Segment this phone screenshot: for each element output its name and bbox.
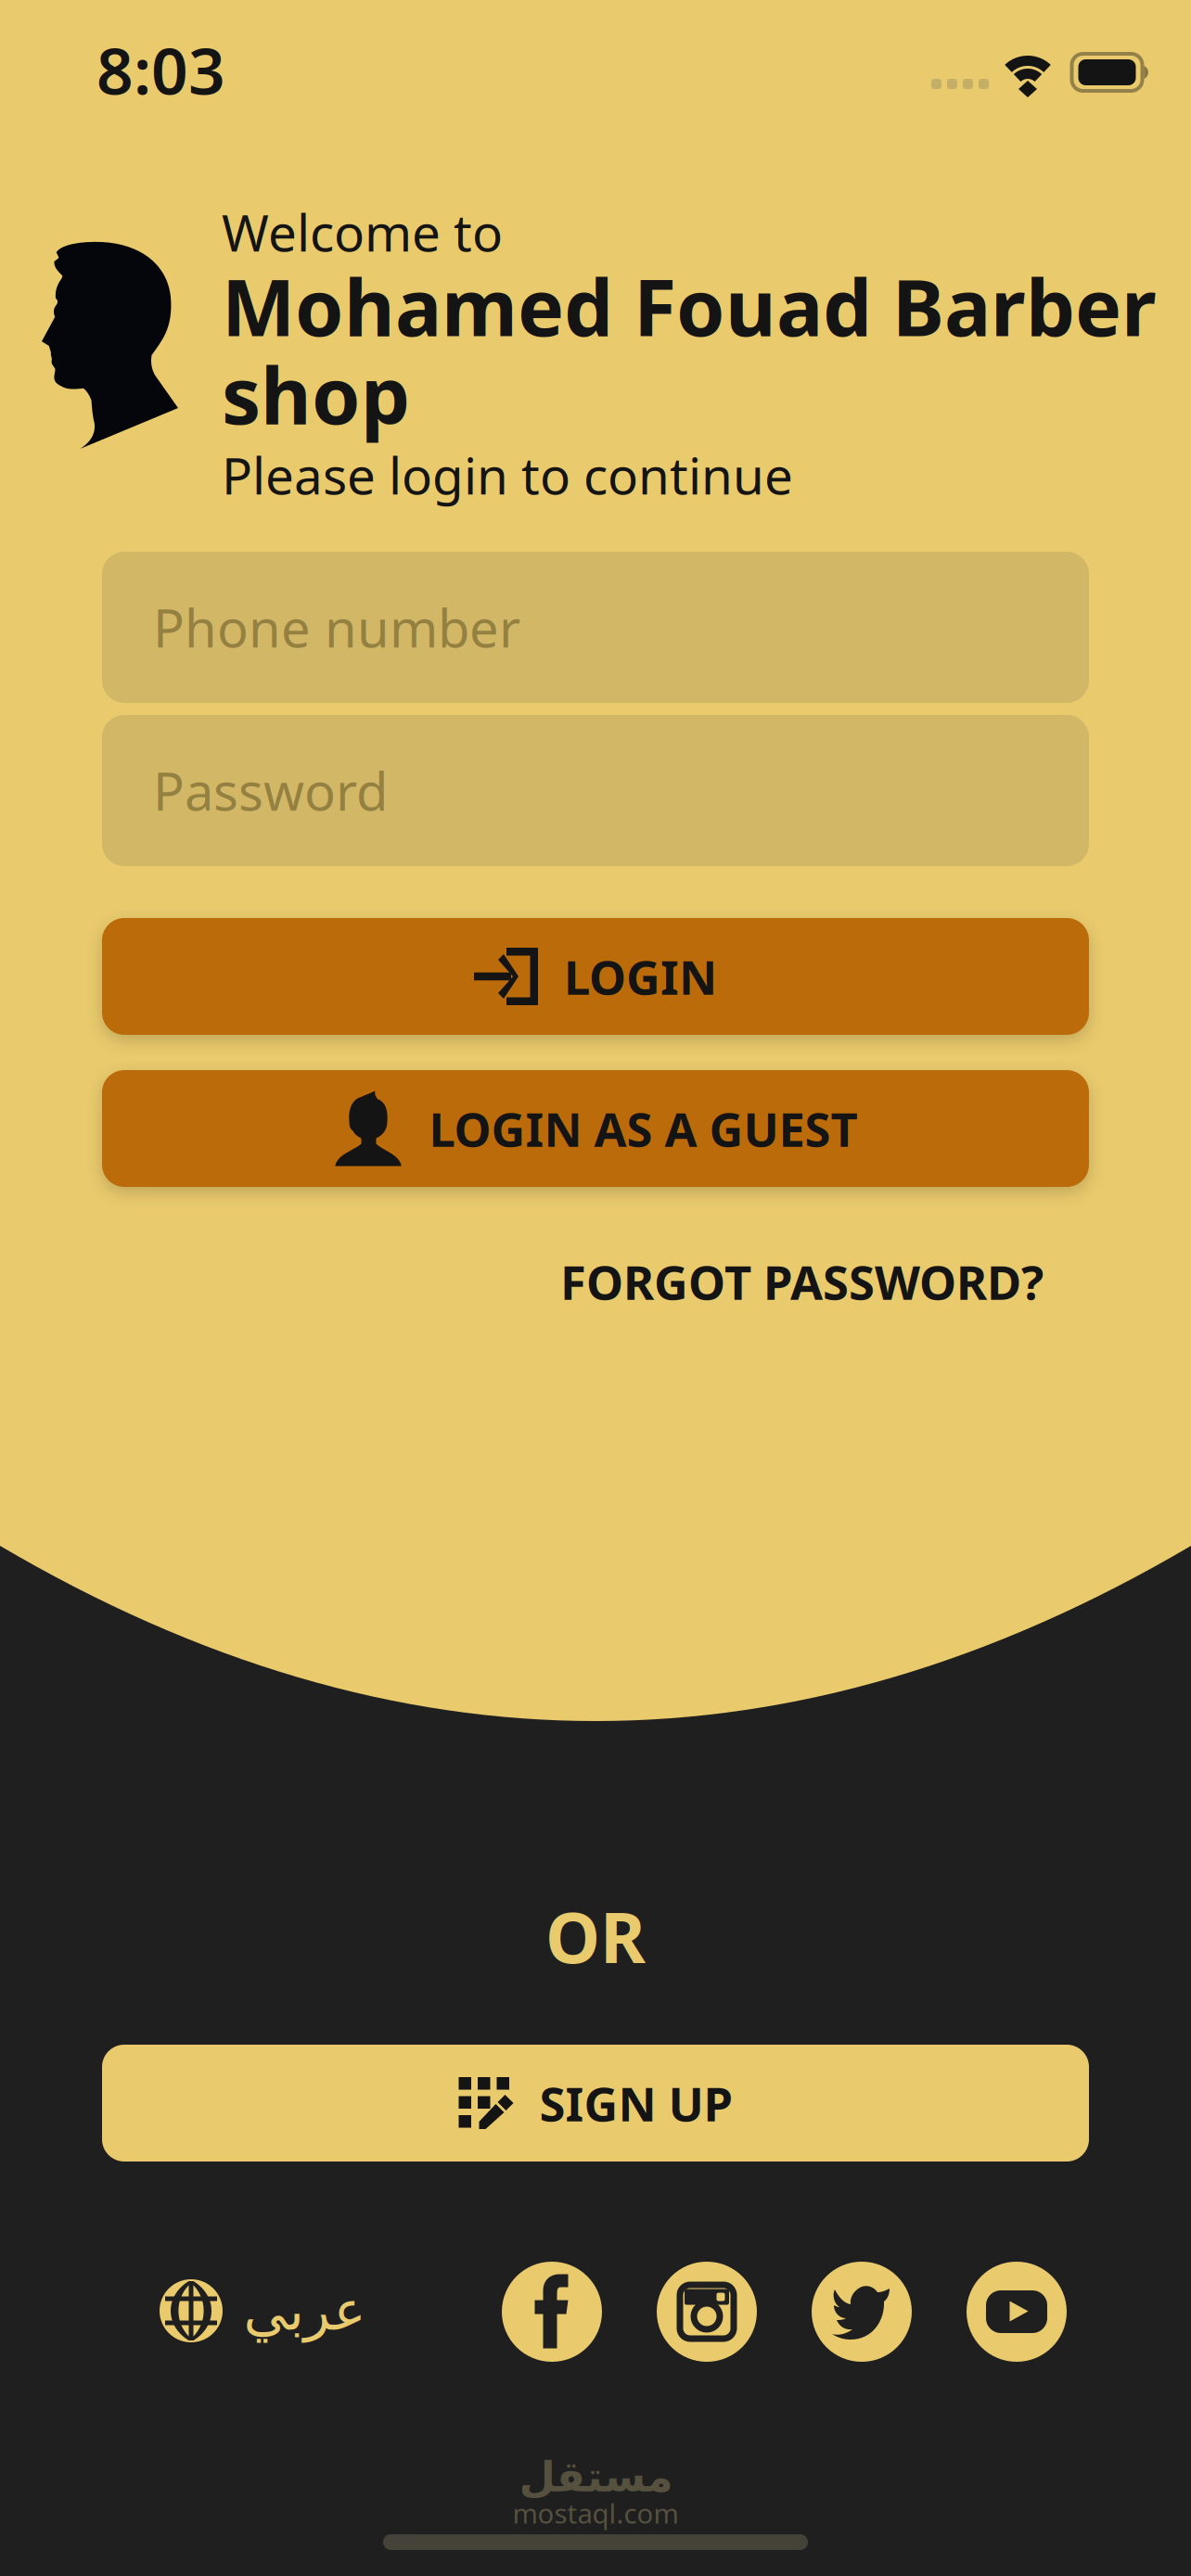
button[interactable]: LOGIN AS A GUEST bbox=[102, 1070, 1089, 1187]
staticText: OR bbox=[545, 1890, 646, 1982]
staticText: Welcome to bbox=[222, 198, 503, 265]
button[interactable]: Instagram bbox=[657, 2262, 757, 2362]
staticText: Password bbox=[153, 756, 388, 825]
staticText: FORGOT PASSWORD? bbox=[560, 1250, 1044, 1313]
staticText: SIGN UP bbox=[539, 2072, 732, 2134]
staticText: LOGIN bbox=[564, 945, 717, 1008]
staticText: mostaql.com bbox=[512, 2495, 679, 2531]
button[interactable]: SIGN UP bbox=[102, 2045, 1089, 2162]
button[interactable]: Facebook bbox=[502, 2262, 602, 2362]
staticText: 8:03 bbox=[96, 27, 225, 112]
staticText: Please login to continue bbox=[222, 441, 793, 508]
button[interactable]: YouTube bbox=[967, 2262, 1067, 2362]
staticText: عربي bbox=[243, 2280, 365, 2342]
staticText: shop bbox=[222, 342, 410, 446]
button[interactable]: Twitter bbox=[812, 2262, 912, 2362]
staticText: Phone number bbox=[153, 593, 520, 662]
button[interactable]: LOGIN bbox=[102, 918, 1089, 1035]
staticText: LOGIN AS A GUEST bbox=[429, 1097, 858, 1160]
staticText: مستقل bbox=[519, 2453, 672, 2501]
staticText: Mohamed Fouad Barber bbox=[222, 254, 1157, 358]
button[interactable]: عربي bbox=[160, 2261, 429, 2361]
button[interactable]: FORGOT PASSWORD? bbox=[487, 1254, 1044, 1309]
